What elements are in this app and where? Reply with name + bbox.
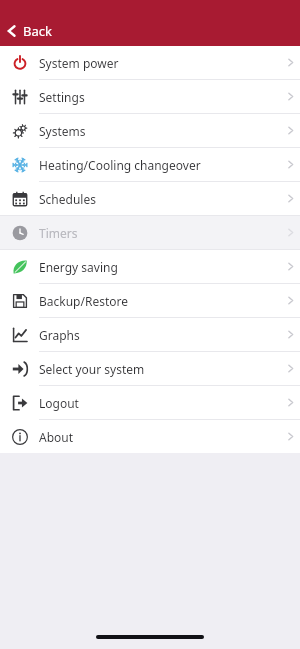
button[interactable]: Energy saving <box>0 250 300 283</box>
staticText: Logout <box>39 395 274 411</box>
staticText: Schedules <box>39 191 274 207</box>
staticText: Back <box>23 22 52 40</box>
staticText: Backup/Restore <box>39 293 274 309</box>
button[interactable]: System power <box>0 46 300 79</box>
staticText: System power <box>39 55 274 71</box>
staticText: Settings <box>39 89 274 105</box>
button[interactable]: Logout <box>0 386 300 419</box>
button[interactable]: Heating/Cooling changeover <box>0 148 300 181</box>
staticText: Select your system <box>39 361 274 377</box>
button[interactable]: Graphs <box>0 318 300 351</box>
staticText: Timers <box>39 225 274 241</box>
staticText: Systems <box>39 123 274 139</box>
button[interactable]: Backup/Restore <box>0 284 300 317</box>
button[interactable]: Systems <box>0 114 300 147</box>
button[interactable]: Select your system <box>0 352 300 385</box>
button[interactable]: Schedules <box>0 182 300 215</box>
button[interactable]: About <box>0 420 300 453</box>
staticText: Heating/Cooling changeover <box>39 157 274 173</box>
button[interactable]: Back <box>5 16 52 46</box>
staticText: Graphs <box>39 327 274 343</box>
staticText: About <box>39 429 274 445</box>
staticText: Energy saving <box>39 259 274 275</box>
button[interactable]: Timers <box>0 216 300 249</box>
button[interactable]: Settings <box>0 80 300 113</box>
